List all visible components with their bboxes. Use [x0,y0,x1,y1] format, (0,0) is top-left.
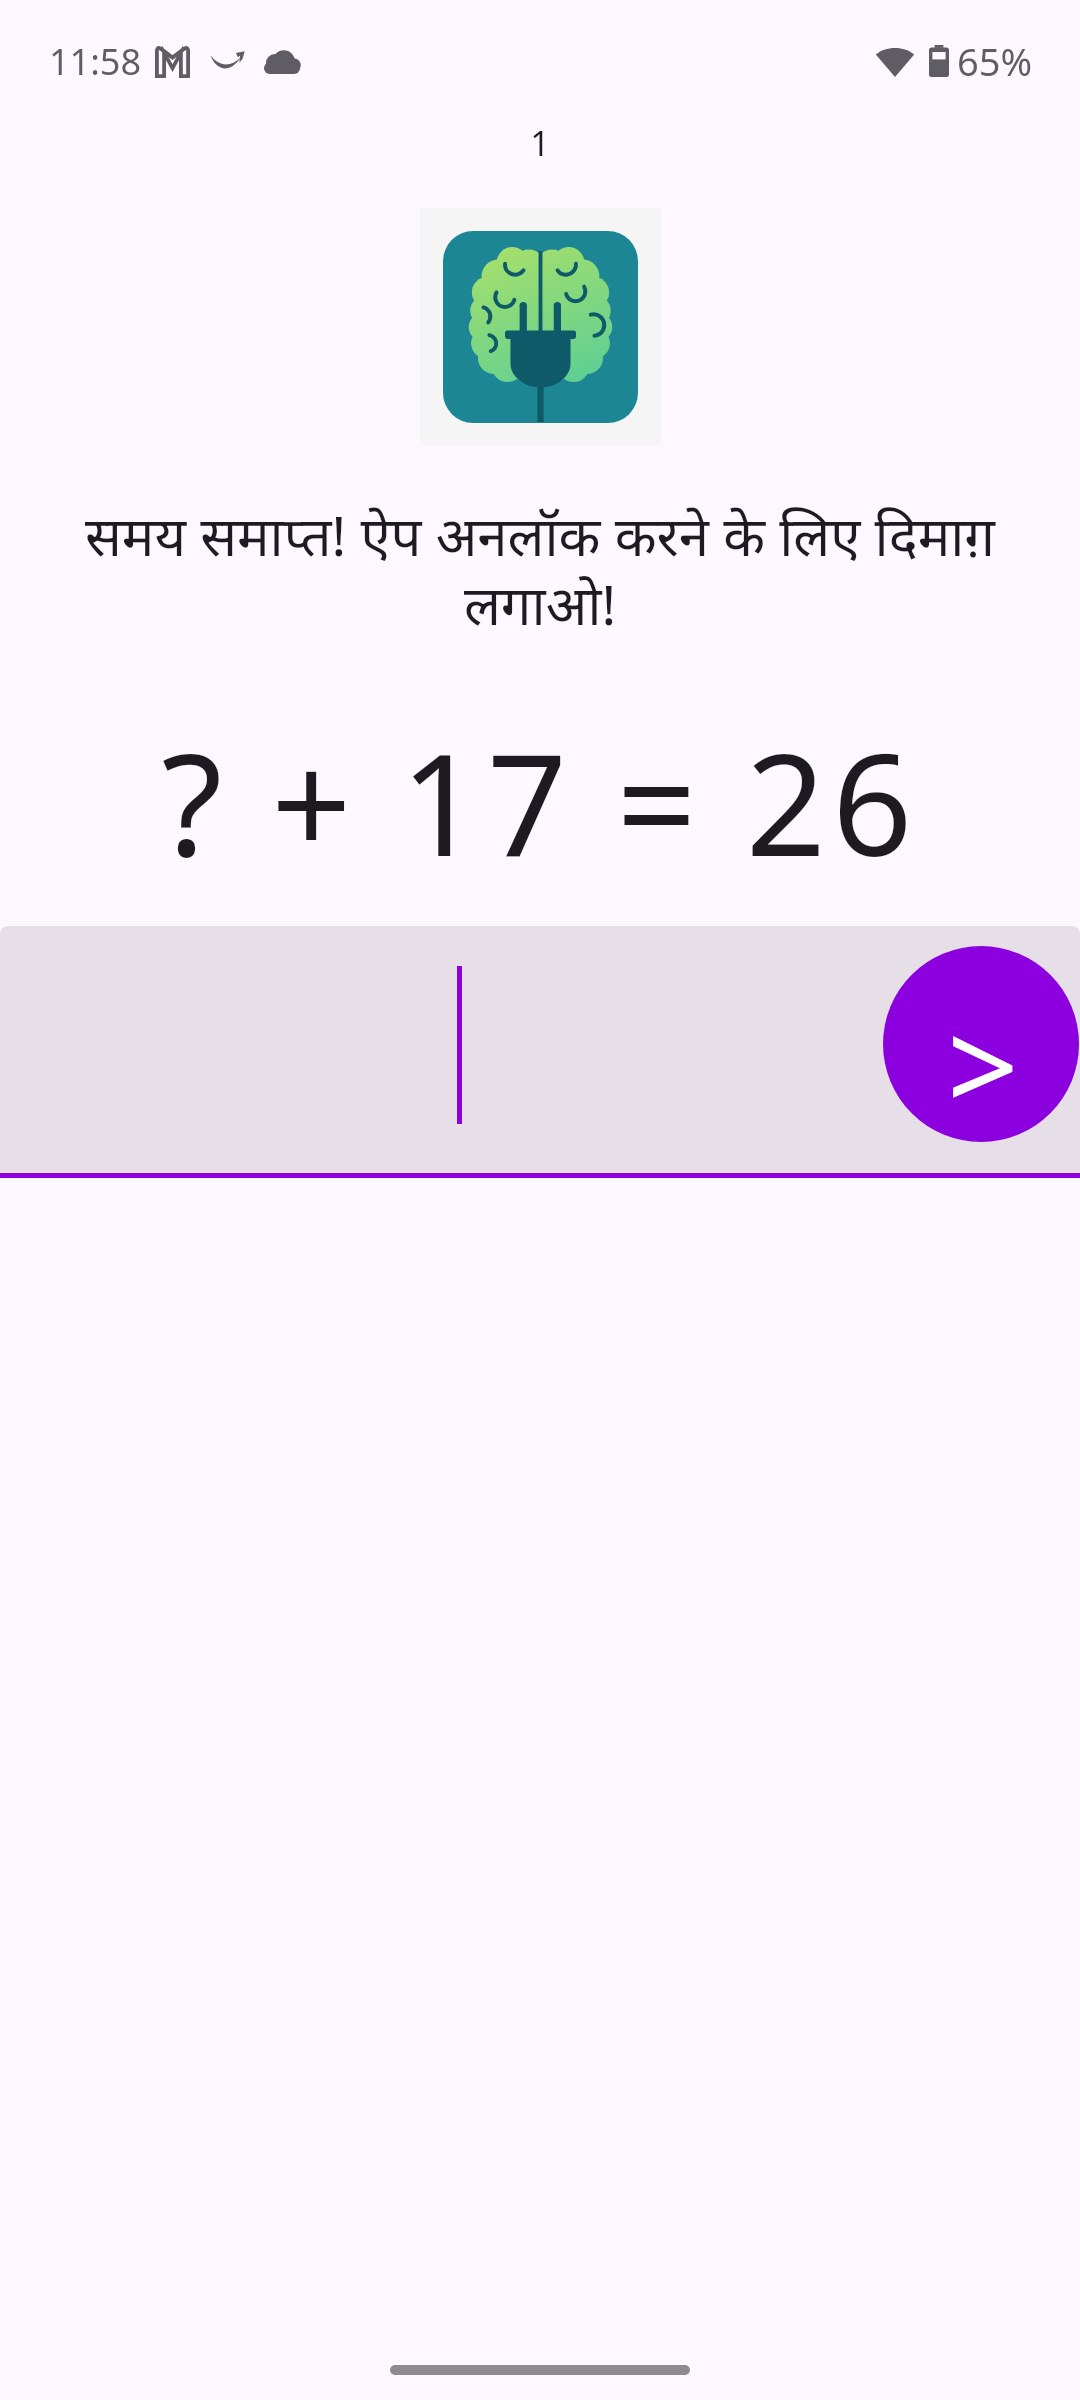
staticText: 65% [957,35,1033,87]
staticText: 1 [0,120,1080,166]
staticText: 11:58 [49,37,142,86]
button[interactable]: Answer input field [0,926,1080,1174]
staticText: समय समाप्त! ऐप अनलॉक करने के लिए दिमाग़ … [40,498,1040,641]
button[interactable]: Submit answer [883,946,1079,1142]
staticText: > [947,978,1019,1142]
staticText: ? + 17 = 26 [0,706,1080,897]
